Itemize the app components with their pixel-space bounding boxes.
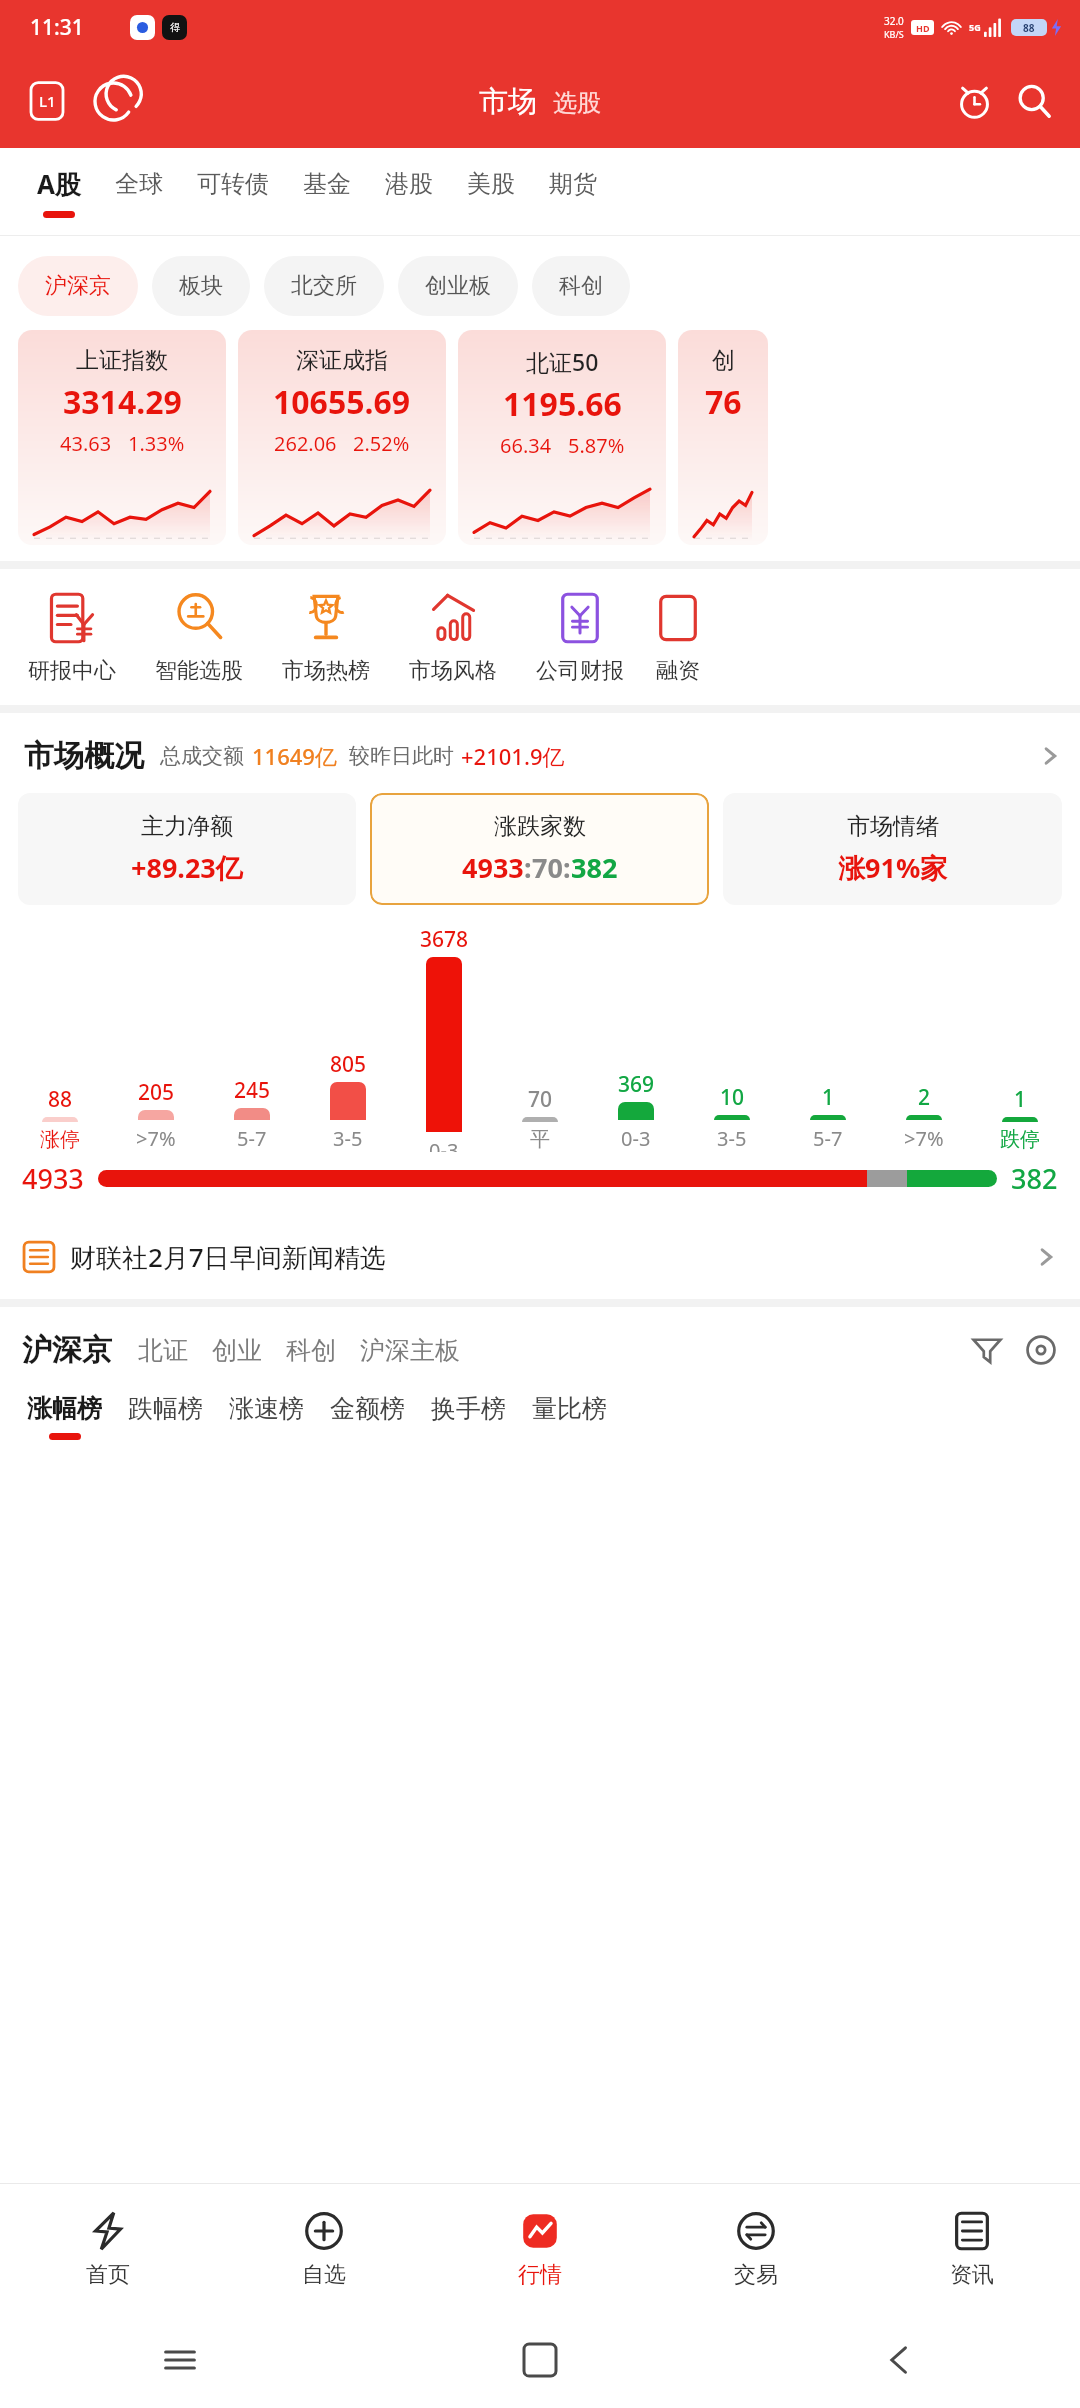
staticText: 66.34	[500, 432, 552, 459]
button[interactable]: 涨跌家数	[370, 793, 709, 905]
staticText: 涨速榜	[229, 1393, 304, 1424]
button[interactable]: 深证成指	[238, 330, 446, 545]
staticText: 涨跌家数	[494, 812, 586, 841]
staticText: 0-3	[429, 1137, 459, 1152]
button[interactable]: 可转债	[180, 148, 286, 236]
staticText: 自选	[302, 2261, 346, 2289]
staticText: 382	[571, 849, 618, 886]
button[interactable]: Night mode	[88, 76, 138, 126]
button[interactable]: 上证指数	[18, 330, 226, 545]
staticText: 805	[330, 1050, 367, 1079]
button[interactable]: 涨速榜	[229, 1393, 304, 1440]
button[interactable]: 行情	[432, 2184, 648, 2312]
staticText: 10655.69	[273, 380, 411, 424]
button[interactable]: Market level L1	[22, 76, 72, 126]
button[interactable]: 市场概况	[0, 713, 1080, 793]
button[interactable]: 市场	[479, 83, 537, 120]
button[interactable]: 港股	[368, 148, 450, 236]
button[interactable]: A股	[20, 148, 98, 236]
button[interactable]: 市场热榜	[262, 591, 389, 685]
staticText: 期货	[549, 169, 597, 199]
button[interactable]: Search	[1008, 75, 1060, 127]
staticText: 科创	[559, 272, 603, 300]
staticText: 智能选股	[155, 657, 243, 685]
button[interactable]: 创业	[212, 1335, 262, 1366]
staticText: 3-5	[333, 1125, 363, 1152]
staticText: 1	[822, 1083, 835, 1112]
staticText: 3678	[420, 925, 469, 954]
button[interactable]: Filter	[964, 1327, 1010, 1373]
staticText: 2	[918, 1083, 931, 1112]
staticText: 11:31	[30, 13, 84, 42]
staticText: 跌幅榜	[128, 1393, 203, 1424]
staticText: 涨幅榜	[27, 1393, 102, 1424]
staticText: 融资	[656, 657, 700, 685]
staticText: 3-5	[717, 1125, 747, 1152]
staticText: 3314.29	[63, 380, 182, 424]
button[interactable]: 创	[678, 330, 768, 545]
button[interactable]: 市场情绪	[723, 793, 1062, 905]
staticText: L1	[39, 91, 56, 111]
button[interactable]: 公司财报	[516, 591, 643, 685]
staticText: 基金	[303, 169, 351, 199]
button[interactable]: 创业板	[398, 256, 518, 316]
button[interactable]: 交易	[648, 2184, 864, 2312]
staticText: 金额榜	[330, 1393, 405, 1424]
staticText: 板块	[179, 272, 223, 300]
button[interactable]: 财联社2月7日早间新闻精选	[0, 1215, 1080, 1299]
button[interactable]: 美股	[450, 148, 532, 236]
staticText: 2.52%	[353, 430, 410, 457]
button[interactable]: Back	[720, 2312, 1080, 2408]
button[interactable]: 科创	[532, 256, 630, 316]
staticText: 1.33%	[128, 430, 185, 457]
button[interactable]: 首页	[0, 2184, 216, 2312]
staticText: 70	[528, 1085, 553, 1114]
staticText: 4933	[462, 849, 524, 886]
button[interactable]: 北交所	[264, 256, 384, 316]
button[interactable]: 沪深京	[18, 256, 138, 316]
button[interactable]: 资讯	[864, 2184, 1080, 2312]
staticText: 沪深京	[45, 272, 111, 300]
staticText: >7%	[136, 1125, 176, 1152]
staticText: 88	[1023, 21, 1035, 35]
button[interactable]: 北证	[138, 1335, 188, 1366]
button[interactable]: 板块	[152, 256, 250, 316]
button[interactable]: 融资	[643, 591, 713, 685]
button[interactable]: 期货	[532, 148, 614, 236]
button[interactable]: 沪深京	[22, 1331, 112, 1369]
button[interactable]: 北证50	[458, 330, 666, 545]
button[interactable]: 智能选股	[135, 591, 262, 685]
button[interactable]: 基金	[286, 148, 368, 236]
staticText: 北证50	[526, 346, 599, 377]
staticText: 交易	[734, 2261, 778, 2289]
button[interactable]: 沪深主板	[360, 1335, 460, 1366]
staticText: 涨停	[40, 1127, 80, 1152]
staticText: 市场风格	[409, 657, 497, 685]
staticText: 换手榜	[431, 1393, 506, 1424]
button[interactable]: 跌幅榜	[128, 1393, 203, 1440]
button[interactable]: 研报中心	[8, 591, 135, 685]
button[interactable]: 选股	[553, 88, 601, 120]
button[interactable]: 自选	[216, 2184, 432, 2312]
staticText: 0-3	[621, 1125, 651, 1152]
button[interactable]: 主力净额	[18, 793, 356, 905]
staticText: KB/S	[884, 28, 904, 40]
staticText: 公司财报	[536, 657, 624, 685]
button[interactable]: 换手榜	[431, 1393, 506, 1440]
button[interactable]: 市场风格	[389, 591, 516, 685]
button[interactable]: 量比榜	[532, 1393, 607, 1440]
button[interactable]: 全球	[98, 148, 180, 236]
staticText: 43.63	[60, 430, 112, 457]
button[interactable]: 涨幅榜	[27, 1393, 102, 1440]
button[interactable]: 金额榜	[330, 1393, 405, 1440]
staticText: 市场概况	[24, 737, 144, 775]
staticText: >7%	[904, 1125, 944, 1152]
button[interactable]: Settings	[1018, 1327, 1064, 1373]
button[interactable]: Recent apps	[0, 2312, 360, 2408]
button[interactable]: 科创	[286, 1335, 336, 1366]
button[interactable]: Home	[360, 2312, 720, 2408]
staticText: 市场情绪	[847, 812, 939, 841]
staticText: 创业板	[425, 272, 491, 300]
button[interactable]: Alerts	[948, 75, 1000, 127]
staticText: 市场热榜	[282, 657, 370, 685]
